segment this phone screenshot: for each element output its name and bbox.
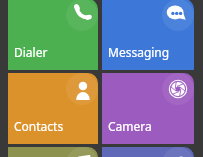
staticText: Contacts bbox=[14, 118, 64, 134]
button[interactable]: Messaging bbox=[102, 0, 194, 70]
staticText: Camera bbox=[108, 118, 152, 134]
staticText: Messaging bbox=[108, 44, 170, 60]
button[interactable]: Clock bbox=[102, 147, 194, 157]
staticText: Dialer bbox=[14, 44, 48, 60]
button[interactable]: Contacts bbox=[8, 73, 98, 144]
button[interactable]: Camera bbox=[102, 73, 194, 144]
button[interactable]: Dialer bbox=[8, 0, 98, 70]
button[interactable]: Notes bbox=[8, 147, 98, 157]
